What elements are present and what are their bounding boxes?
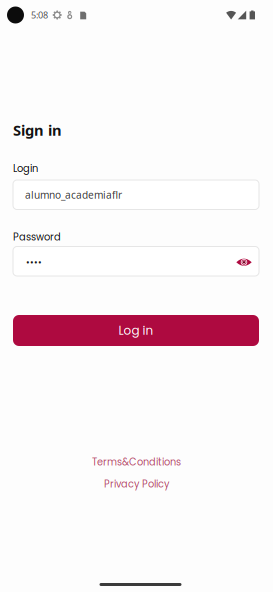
staticText: Privacy Policy xyxy=(104,477,169,491)
staticText: Sign in xyxy=(13,120,62,140)
button[interactable]: Show password xyxy=(231,250,253,272)
button[interactable]: Log in xyxy=(13,315,259,346)
staticText: alumno_academiaflr xyxy=(25,188,122,202)
staticText: 5:08 xyxy=(31,9,48,21)
staticText: Terms&Conditions xyxy=(92,455,181,469)
button[interactable]: Terms&Conditions xyxy=(92,455,181,469)
staticText: Log in xyxy=(118,322,153,339)
staticText: Password xyxy=(13,230,61,244)
staticText: Login xyxy=(13,162,38,175)
button[interactable]: Privacy Policy xyxy=(104,477,169,491)
staticText: •••• xyxy=(26,255,42,268)
